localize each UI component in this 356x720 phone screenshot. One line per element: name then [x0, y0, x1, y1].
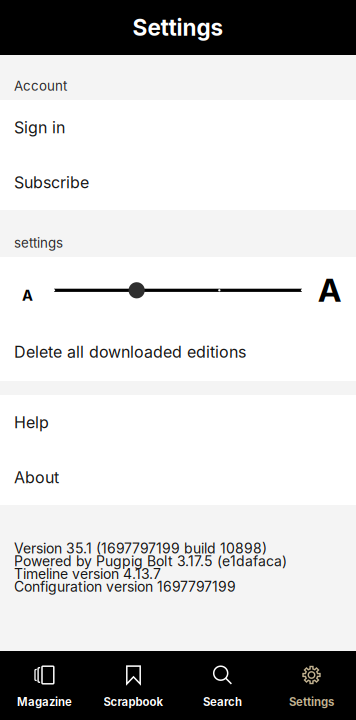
- staticText: Magazine: [17, 695, 72, 709]
- button[interactable]: Help: [0, 395, 356, 450]
- button[interactable]: Delete all downloaded editions: [0, 323, 356, 381]
- staticText: Delete all downloaded editions: [14, 342, 246, 362]
- button[interactable]: Settings: [267, 651, 356, 720]
- staticText: Subscribe: [14, 173, 89, 192]
- staticText: Timeline version 4.13.7: [14, 565, 161, 582]
- button[interactable]: Magazine: [0, 651, 89, 720]
- button[interactable]: Sign in: [0, 100, 356, 155]
- staticText: Sign in: [14, 118, 65, 137]
- staticText: settings: [14, 235, 63, 251]
- staticText: Settings: [132, 14, 223, 41]
- staticText: Help: [14, 413, 49, 432]
- staticText: A: [22, 287, 33, 304]
- staticText: Version 35.1 (1697797199 build 10898): [14, 540, 267, 557]
- staticText: Search: [203, 695, 242, 709]
- staticText: Scrapbook: [103, 695, 163, 709]
- button[interactable]: About: [0, 450, 356, 505]
- staticText: Powered by Pugpig Bolt 3.17.5 (e1dafaca): [14, 553, 287, 570]
- staticText: Account: [14, 78, 67, 94]
- staticText: Configuration version 1697797199: [14, 578, 236, 595]
- button[interactable]: Scrapbook: [89, 651, 178, 720]
- staticText: A: [318, 271, 341, 309]
- staticText: Settings: [289, 695, 334, 709]
- button[interactable]: Search: [178, 651, 267, 720]
- staticText: About: [14, 468, 59, 487]
- button[interactable]: Subscribe: [0, 155, 356, 210]
